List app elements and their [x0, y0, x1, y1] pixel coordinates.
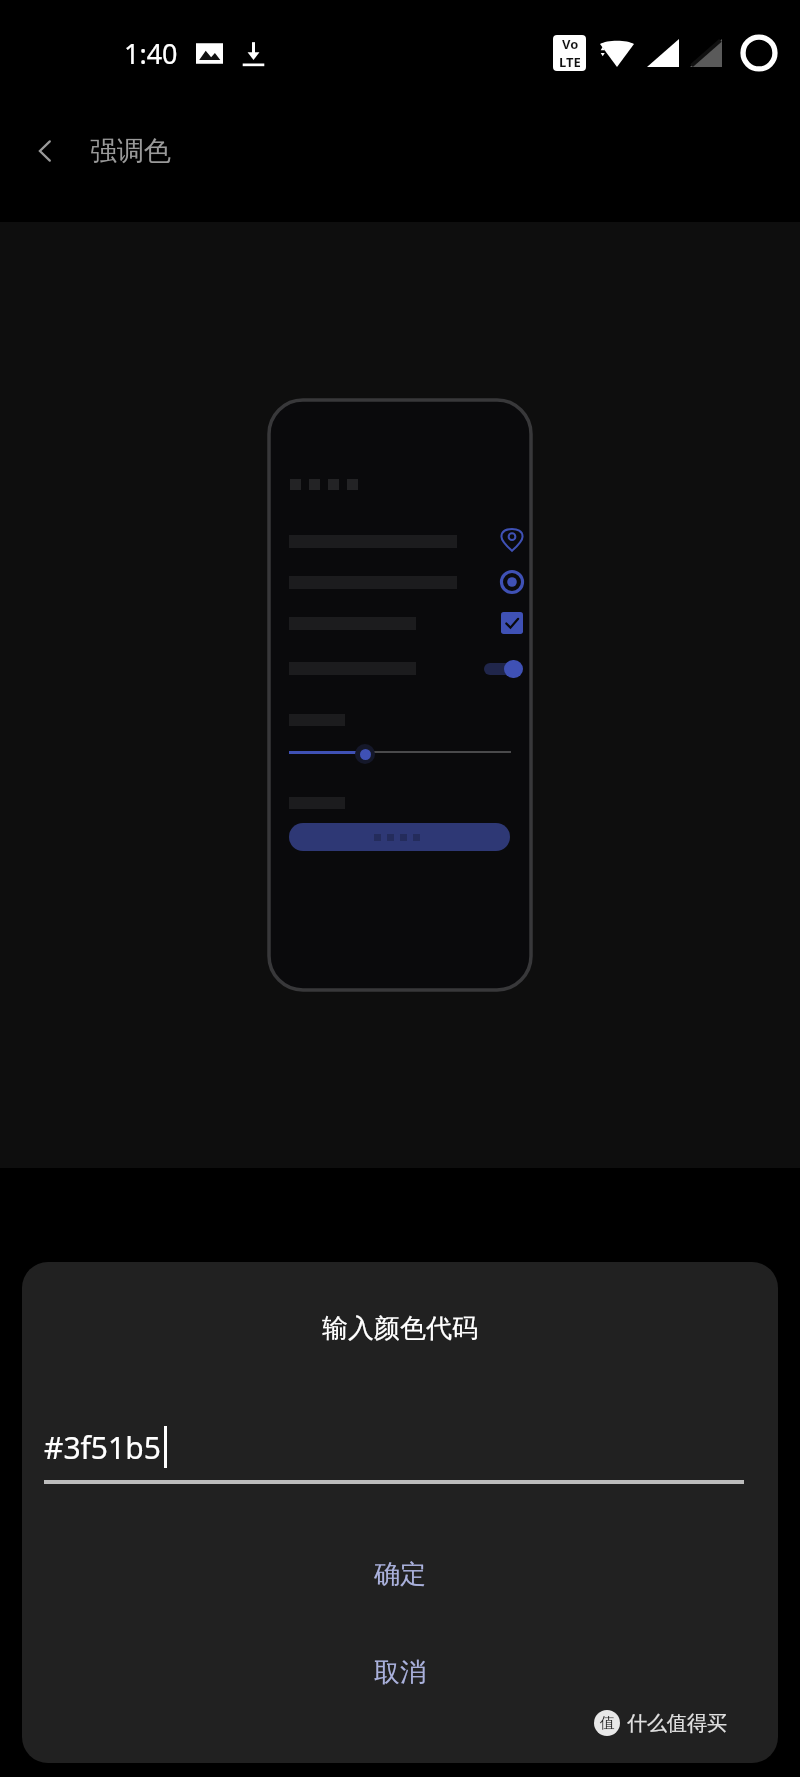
staticText: 1:40: [124, 35, 178, 72]
staticText: 什么值得买: [627, 1711, 727, 1736]
button[interactable]: 确定: [22, 1530, 778, 1618]
staticText: LTE: [559, 53, 581, 71]
staticText: 强调色: [90, 134, 171, 168]
button[interactable]: 取消: [22, 1628, 778, 1716]
staticText: #3f51b5: [44, 1427, 161, 1468]
staticText: 取消: [374, 1656, 426, 1689]
staticText: 输入颜色代码: [22, 1312, 778, 1345]
staticText: Vo: [562, 35, 579, 53]
staticText: 确定: [374, 1558, 426, 1591]
button[interactable]: Back: [0, 106, 90, 196]
staticText: 值: [600, 1714, 615, 1733]
button[interactable]: #3f51b5: [44, 1412, 744, 1492]
